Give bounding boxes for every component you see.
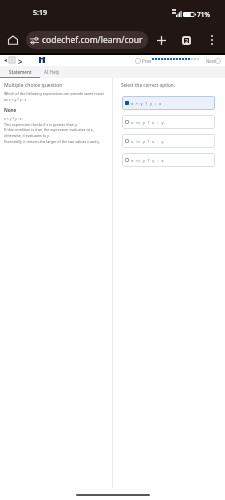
staticText: None [4, 107, 17, 113]
staticText: AI Help [44, 69, 60, 75]
staticText: x <= y ? y : x [131, 158, 164, 163]
staticText: x < y ? y : x [4, 116, 22, 121]
button[interactable]: x == y ? x : y [122, 115, 215, 129]
staticText: 71% [197, 10, 210, 19]
staticText: codechef.com/learn/cour [42, 34, 143, 46]
button[interactable]: Back [3, 58, 8, 63]
button[interactable]: Next [215, 58, 221, 64]
button[interactable]: x < y ? y : x [122, 96, 215, 110]
button[interactable]: x >= y ? x : y [122, 134, 215, 148]
button[interactable]: Statement [0, 66, 40, 78]
button[interactable]: Previous [135, 58, 141, 64]
button[interactable]: codechef.com/learn/cour [26, 31, 148, 49]
staticText: This expression checks if x is greater t… [4, 122, 78, 127]
staticText: Statement [9, 69, 32, 75]
staticText: as x < y ? y : x [4, 97, 27, 102]
staticText: 2 [185, 37, 189, 44]
button[interactable]: Contents [9, 57, 15, 63]
staticText: Essentially, it returns the larger of th… [4, 139, 100, 144]
staticText: x == y ? x : y [131, 120, 164, 125]
staticText: Multiple choice question [4, 82, 63, 89]
staticText: otherwise, it evaluates to y. [4, 133, 50, 138]
button[interactable]: Tabs [177, 31, 195, 49]
staticText: Prev [142, 58, 152, 64]
button[interactable]: More options [203, 31, 221, 49]
staticText: x >= y ? x : y [131, 139, 164, 144]
staticText: Next [206, 58, 216, 64]
button[interactable]: x <= y ? y : x [122, 153, 215, 167]
staticText: 5:19 [33, 8, 47, 18]
button[interactable]: AI Help [40, 66, 63, 78]
staticText: If this condition is true, the expressio… [4, 127, 94, 132]
staticText: > [18, 56, 23, 67]
button[interactable]: New tab [152, 31, 170, 49]
staticText: x < y ? y : x [131, 101, 162, 106]
button[interactable]: Home [4, 31, 22, 49]
staticText: Which of the following expressions can p… [4, 91, 104, 96]
staticText: Select the correct option. [121, 82, 175, 88]
button[interactable]: Site logo [39, 57, 45, 63]
